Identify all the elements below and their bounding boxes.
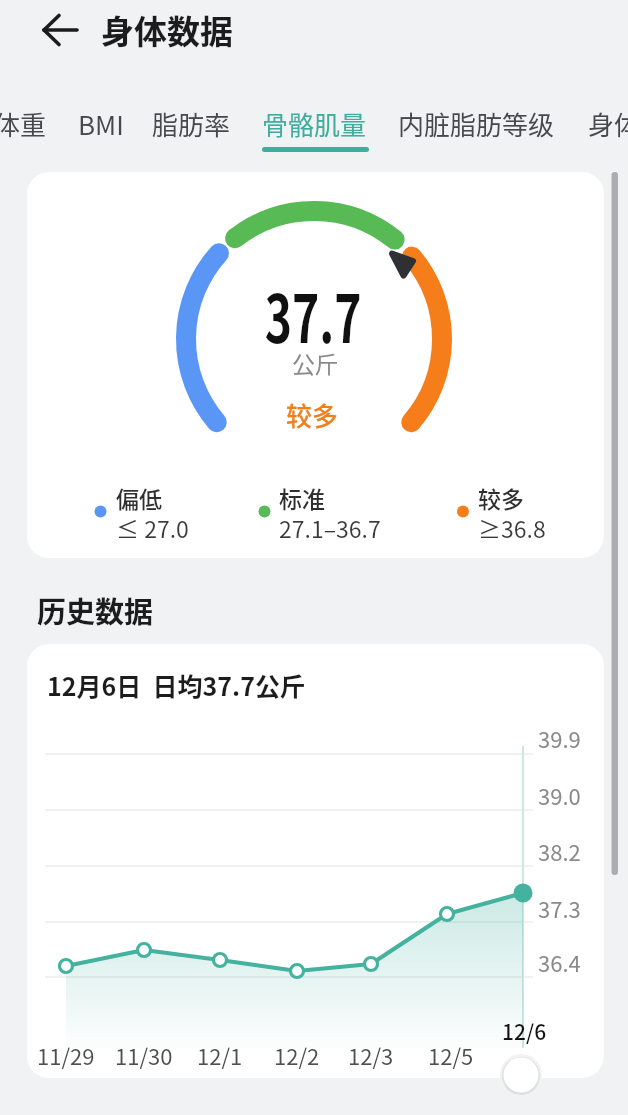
button[interactable]: 骨骼肌量 [262, 100, 369, 148]
staticText: 12月6日 日均37.7公斤 [47, 667, 305, 703]
staticText: 脂肪率 [152, 105, 231, 143]
button[interactable]: 身体成分 [588, 100, 628, 148]
staticText: 内脏脂肪等级 [398, 105, 555, 143]
staticText: 较多 [478, 481, 524, 514]
button[interactable] [36, 12, 86, 50]
staticText: BMI [78, 105, 124, 143]
staticText: 身体成分 [588, 105, 628, 143]
staticText: 11/29 [37, 1039, 95, 1069]
button[interactable]: 内脏脂肪等级 [398, 100, 558, 148]
staticText: 36.4 [538, 946, 581, 976]
staticText: 公斤 [292, 346, 338, 379]
staticText: 37.7 [265, 266, 362, 356]
staticText: 27.1–36.7 [279, 511, 381, 544]
staticText: 37.3 [538, 892, 581, 922]
staticText: ≥36.8 [478, 511, 546, 544]
staticText: 39.0 [538, 779, 581, 809]
staticText: 38.2 [538, 835, 581, 865]
staticText: 12/2 [274, 1039, 320, 1069]
staticText: 较多 [286, 396, 339, 434]
button[interactable] [504, 1057, 540, 1093]
staticText: 标准 [279, 481, 325, 514]
staticText: 11/30 [115, 1039, 173, 1069]
button[interactable]: BMI [78, 100, 130, 148]
staticText: 体重 [0, 105, 47, 143]
staticText: 12/5 [428, 1039, 474, 1069]
staticText: 12/6 [502, 1016, 547, 1046]
staticText: 39.9 [538, 722, 581, 752]
staticText: 12/3 [348, 1039, 394, 1069]
staticText: 骨骼肌量 [262, 105, 367, 143]
staticText: 身体数据 [101, 6, 233, 52]
button[interactable]: 脂肪率 [152, 100, 232, 148]
staticText: 历史数据 [37, 589, 154, 631]
button[interactable]: 体重 [0, 100, 54, 148]
staticText: ≤ 27.0 [116, 511, 189, 544]
staticText: 偏低 [116, 481, 162, 514]
staticText: 12/1 [197, 1039, 243, 1069]
